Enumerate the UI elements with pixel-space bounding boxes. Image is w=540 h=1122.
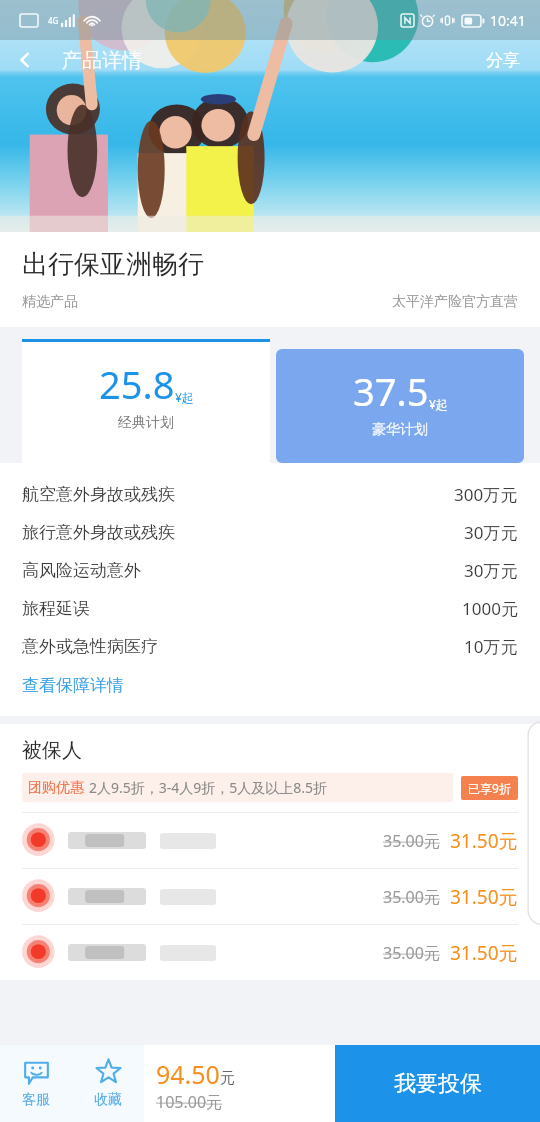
staticText: 旅行意外身故或残疾: [22, 522, 175, 543]
button[interactable]: 我要投保: [335, 1045, 540, 1122]
staticText: 被保人: [22, 738, 82, 763]
staticText: 精选产品: [22, 293, 78, 311]
staticText: 30万元: [464, 521, 518, 544]
button[interactable]: 25.8: [22, 339, 270, 463]
staticText: 31.50元: [450, 940, 518, 966]
staticText: 经典计划: [118, 414, 174, 432]
staticText: 我要投保: [394, 1070, 482, 1098]
staticText: 出行保亚洲畅行: [22, 248, 204, 281]
button[interactable]: 查看保障详情: [22, 669, 124, 702]
staticText: 团购优惠: [28, 779, 84, 797]
staticText: 37.5: [353, 365, 429, 417]
staticText: 旅程延误: [22, 598, 90, 619]
button[interactable]: 分享: [466, 44, 540, 77]
staticText: 35.00元: [383, 942, 440, 964]
staticText: 收藏: [94, 1091, 122, 1109]
button[interactable]: 35.00元: [22, 869, 518, 924]
staticText: 豪华计划: [372, 421, 428, 439]
staticText: 30万元: [464, 559, 518, 582]
button[interactable]: 客服: [0, 1045, 72, 1122]
button[interactable]: 收藏: [72, 1045, 144, 1122]
staticText: 产品详情: [62, 48, 142, 73]
staticText: 航空意外身故或残疾: [22, 484, 175, 505]
staticText: 94.50: [156, 1057, 220, 1091]
staticText: 35.00元: [383, 886, 440, 908]
button[interactable]: 35.00元: [22, 925, 518, 980]
staticText: 105.00元: [156, 1091, 223, 1113]
staticText: 意外或急性病医疗: [22, 636, 158, 657]
staticText: 太平洋产险官方直营: [392, 293, 518, 311]
staticText: 10万元: [464, 635, 518, 658]
staticText: 31.50元: [450, 884, 518, 910]
staticText: 高风险运动意外: [22, 560, 141, 581]
staticText: 4G: [48, 15, 59, 26]
staticText: 客服: [22, 1091, 50, 1109]
staticText: 35.00元: [383, 830, 440, 852]
staticText: 300万元: [454, 483, 518, 506]
staticText: 1000元: [462, 597, 518, 620]
button[interactable]: Back: [0, 45, 44, 75]
button[interactable]: 35.00元: [22, 813, 518, 868]
staticText: ¥起: [175, 389, 194, 405]
staticText: 25.8: [99, 358, 175, 410]
staticText: 31.50元: [450, 828, 518, 854]
staticText: 2人9.5折，3-4人9折，5人及以上8.5折: [89, 778, 328, 797]
staticText: ¥起: [429, 396, 448, 412]
staticText: 已享9折: [468, 780, 511, 796]
staticText: 10:41: [490, 11, 526, 30]
staticText: 元: [220, 1069, 235, 1088]
button[interactable]: 37.5: [276, 349, 524, 463]
